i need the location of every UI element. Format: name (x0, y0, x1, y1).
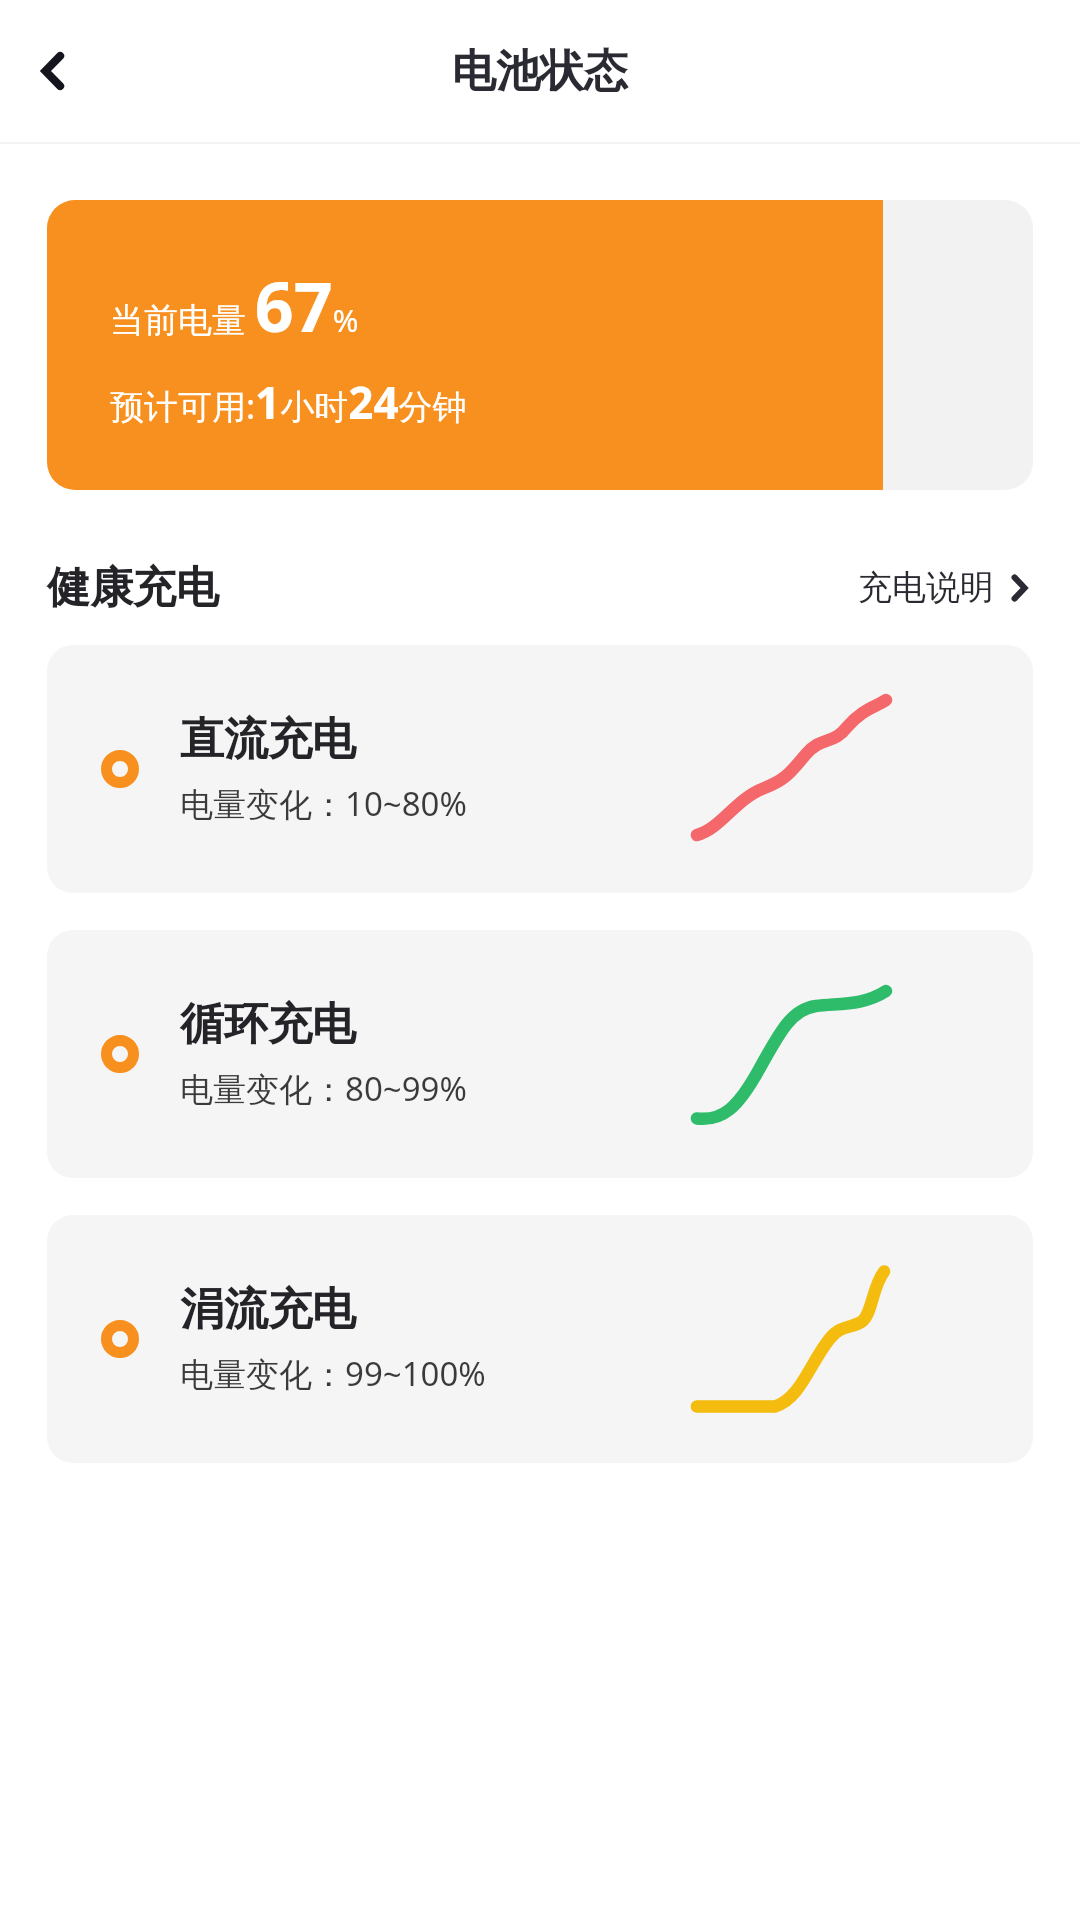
staticText: 电池状态 (452, 44, 628, 99)
staticText: 充电说明 (858, 566, 994, 609)
staticText: 当前电量 67% (110, 259, 359, 352)
button[interactable]: 涓流充电 (47, 1215, 1033, 1463)
button[interactable]: 循环充电 (47, 930, 1033, 1178)
button[interactable]: 直流充电 (47, 645, 1033, 893)
staticText: 循环充电 (180, 997, 356, 1052)
staticText: 电量变化：80~99% (180, 1066, 467, 1111)
staticText: 涓流充电 (180, 1282, 356, 1337)
button[interactable]: 充电说明 (858, 556, 1033, 619)
button[interactable]: Back (13, 31, 93, 111)
staticText: 预计可用:1小时24分钟 (110, 372, 467, 432)
staticText: 健康充电 (47, 561, 219, 615)
staticText: 电量变化：10~80% (180, 781, 467, 826)
staticText: 电量变化：99~100% (180, 1351, 486, 1396)
button[interactable]: 当前电量 67% (47, 200, 1033, 490)
staticText: 直流充电 (180, 712, 356, 767)
